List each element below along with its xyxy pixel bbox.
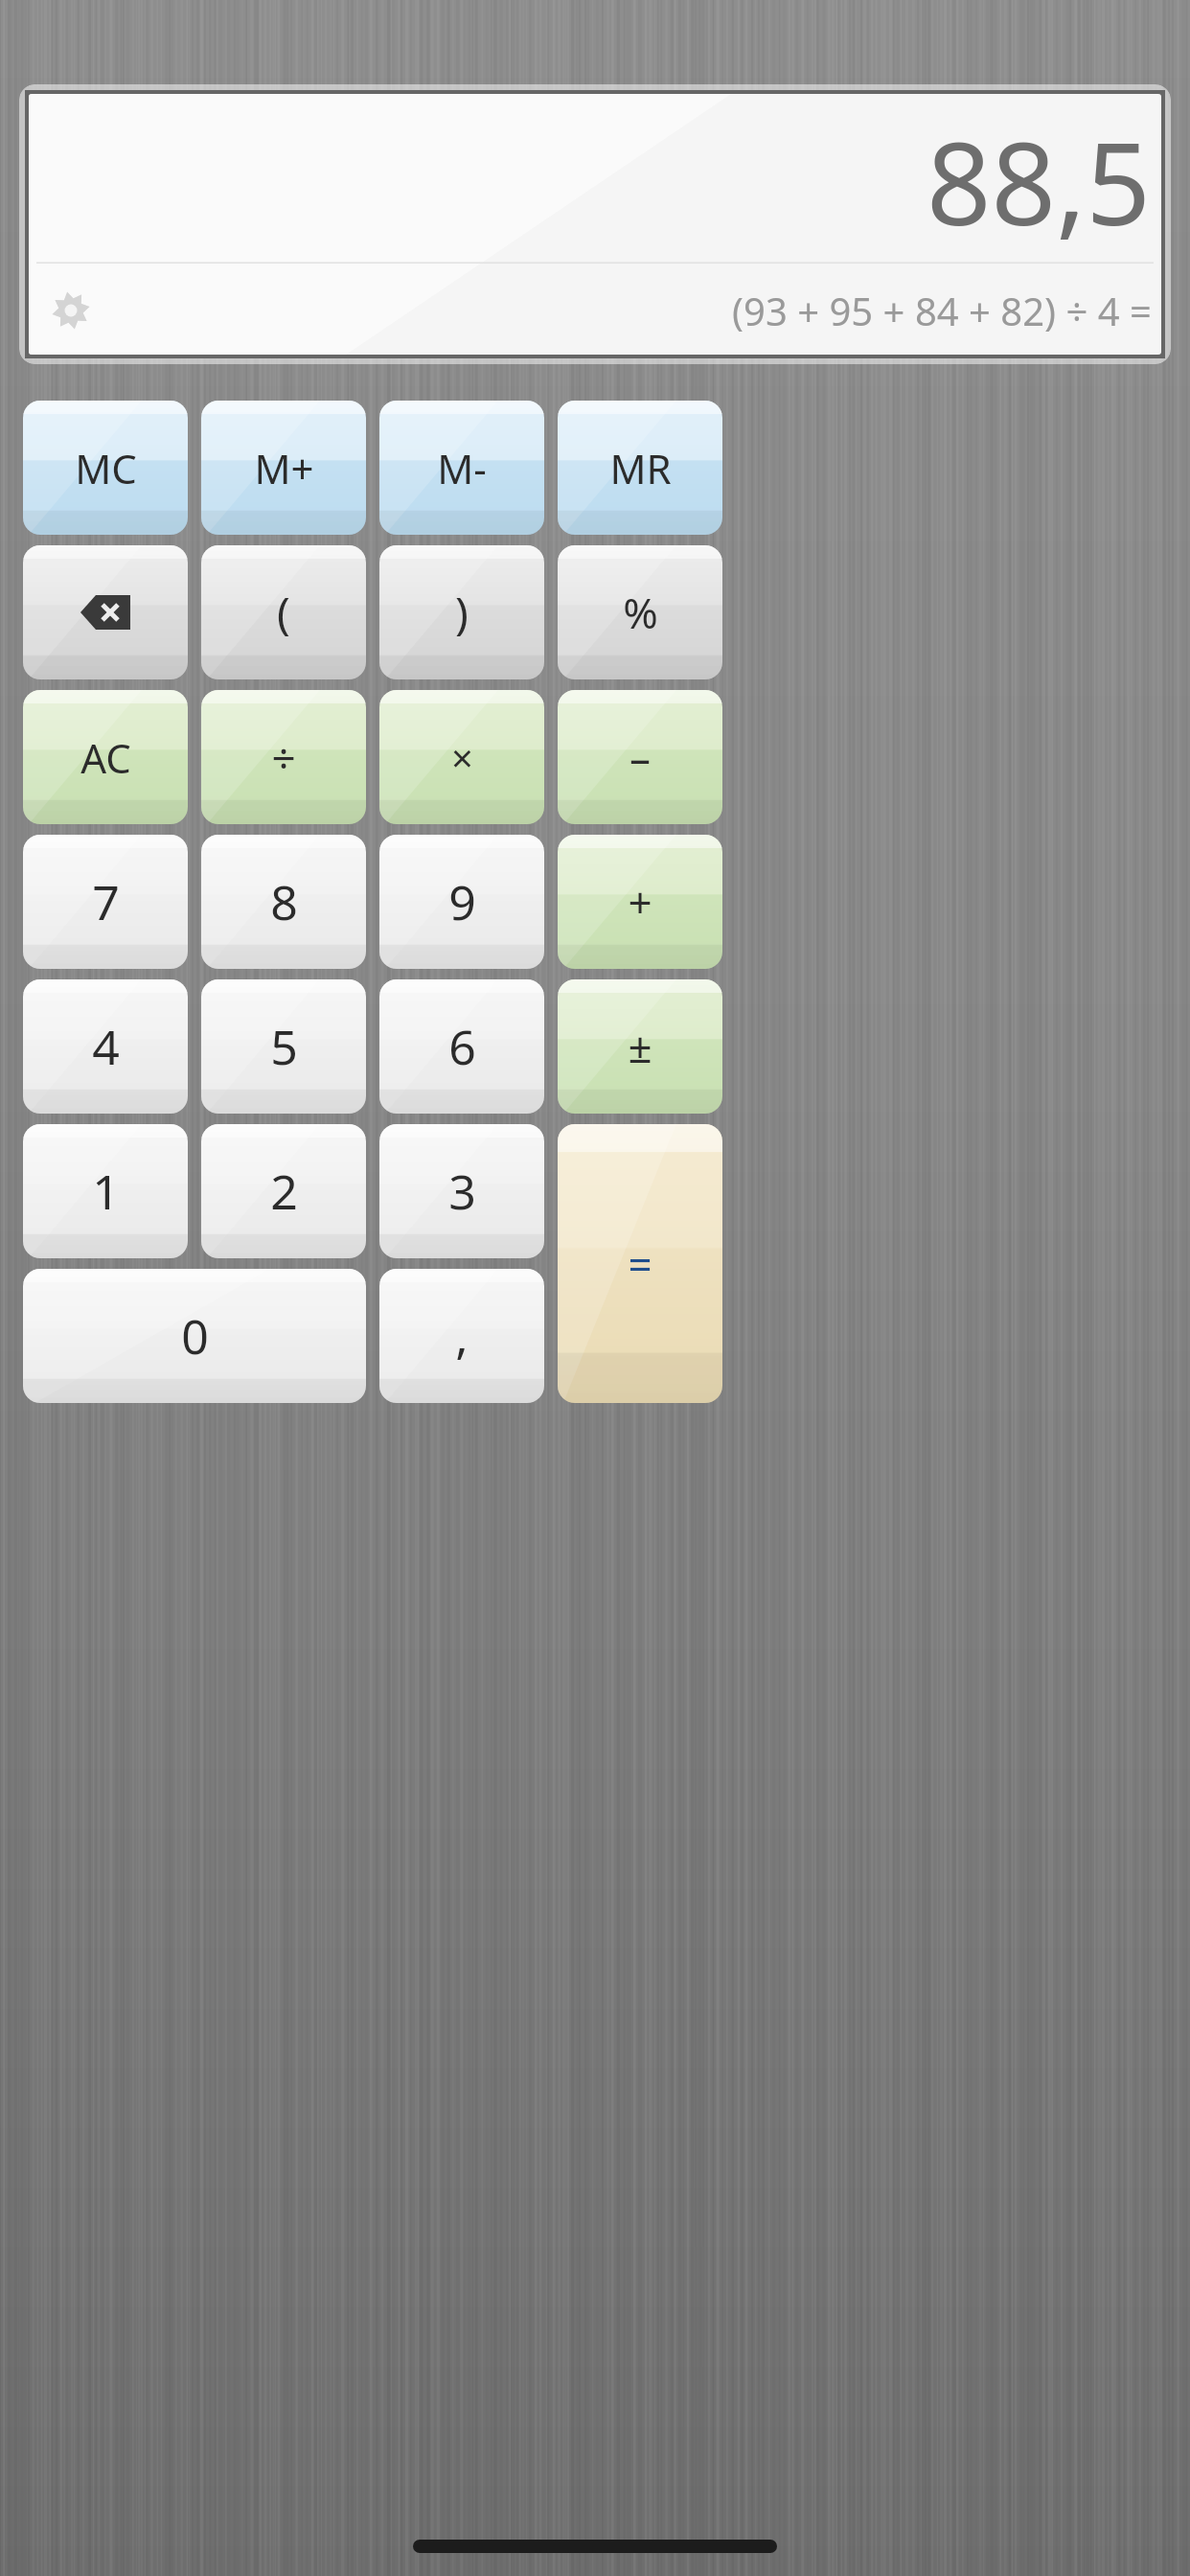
staticText: 4 [92,1014,120,1079]
button[interactable]: 7 [23,835,188,969]
staticText: 88,5 [927,104,1152,259]
button[interactable]: M- [379,401,544,535]
button[interactable]: 1 [23,1124,188,1258]
staticText: 0 [181,1303,209,1368]
staticText: MC [75,441,137,495]
button[interactable]: ( [201,545,366,679]
button[interactable]: % [558,545,722,679]
staticText: M+ [254,441,314,495]
button[interactable]: ± [558,979,722,1114]
staticText: ( [277,583,290,643]
staticText: 3 [448,1159,476,1224]
button[interactable]: MR [558,401,722,535]
staticText: ± [628,1018,652,1075]
button[interactable]: 88,5 [29,94,1161,355]
staticText: 2 [270,1159,298,1224]
button[interactable]: – [558,690,722,824]
button[interactable]: 8 [201,835,366,969]
staticText: MR [609,441,672,495]
button[interactable]: ÷ [201,690,366,824]
staticText: – [629,728,651,786]
button[interactable]: × [379,690,544,824]
button[interactable]: = [558,1124,722,1403]
staticText: × [451,731,473,783]
button[interactable]: 3 [379,1124,544,1258]
staticText: 6 [448,1014,476,1079]
staticText: 5 [270,1014,298,1079]
button[interactable]: AC [23,690,188,824]
button[interactable]: ) [379,545,544,679]
button[interactable]: M+ [201,401,366,535]
button[interactable]: Settings [44,284,98,337]
button[interactable]: + [558,835,722,969]
staticText: (93 + 95 + 84 + 82) ÷ 4 = [732,285,1152,336]
button[interactable]: 5 [201,979,366,1114]
staticText: , [455,1303,469,1368]
button[interactable]: 6 [379,979,544,1114]
button[interactable]: , [379,1269,544,1403]
staticText: 1 [92,1159,120,1224]
staticText: + [628,873,652,931]
staticText: = [628,1235,652,1293]
staticText: AC [80,730,131,785]
button[interactable]: MC [23,401,188,535]
staticText: % [623,584,658,641]
button[interactable]: 0 [23,1269,366,1403]
staticText: ) [455,583,469,643]
staticText: 8 [270,869,298,934]
staticText: M- [437,441,487,495]
button[interactable]: 2 [201,1124,366,1258]
staticText: 7 [92,869,120,934]
staticText: ÷ [271,728,296,786]
button[interactable]: 4 [23,979,188,1114]
button[interactable]: 9 [379,835,544,969]
staticText: 9 [448,869,476,934]
button[interactable]: Backspace [23,545,188,679]
